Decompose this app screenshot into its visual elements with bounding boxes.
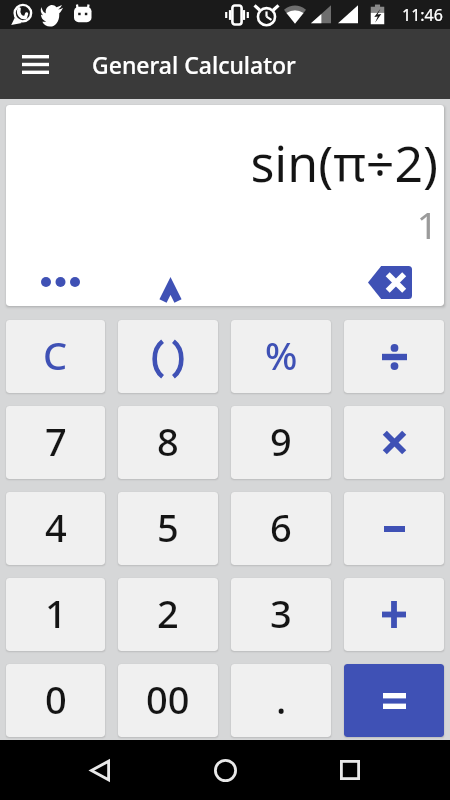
button[interactable]: = bbox=[344, 664, 444, 737]
button[interactable]: ÷ bbox=[344, 320, 444, 393]
button[interactable]: − bbox=[344, 492, 444, 565]
button[interactable]: Back bbox=[70, 740, 130, 800]
button[interactable]: 0 bbox=[6, 664, 105, 737]
staticText: General Calculator bbox=[92, 49, 296, 80]
staticText: 3 bbox=[270, 587, 292, 639]
staticText: C bbox=[43, 329, 68, 381]
staticText: . bbox=[276, 673, 287, 725]
staticText: 7 bbox=[45, 415, 67, 467]
button[interactable]: Home bbox=[195, 740, 255, 800]
staticText: 1 bbox=[45, 587, 67, 639]
button[interactable]: 9 bbox=[231, 406, 331, 479]
button[interactable]: () bbox=[118, 320, 218, 393]
button[interactable]: Expand bbox=[146, 275, 194, 306]
button[interactable]: 00 bbox=[118, 664, 218, 737]
staticText: 9 bbox=[270, 415, 292, 467]
staticText: 1 bbox=[6, 199, 438, 249]
button[interactable]: Recents bbox=[320, 740, 380, 800]
button[interactable]: × bbox=[344, 406, 444, 479]
button[interactable]: 6 bbox=[231, 492, 331, 565]
staticText: 4 bbox=[45, 501, 67, 553]
staticText: 2 bbox=[157, 587, 179, 639]
button[interactable]: 2 bbox=[118, 578, 218, 651]
staticText: 5 bbox=[157, 501, 179, 553]
button[interactable]: 1 bbox=[6, 578, 105, 651]
staticText: 8 bbox=[157, 415, 179, 467]
button[interactable]: 4 bbox=[6, 492, 105, 565]
staticText: 11:46 bbox=[402, 4, 443, 26]
button[interactable]: 8 bbox=[118, 406, 218, 479]
staticText: 0 bbox=[45, 673, 67, 725]
staticText: sin(π÷2) bbox=[6, 129, 438, 197]
button[interactable]: Backspace bbox=[364, 263, 416, 301]
button[interactable]: 5 bbox=[118, 492, 218, 565]
button[interactable]: 3 bbox=[231, 578, 331, 651]
staticText: 00 bbox=[146, 673, 190, 725]
button[interactable]: 7 bbox=[6, 406, 105, 479]
button[interactable]: % bbox=[231, 320, 331, 393]
staticText: % bbox=[265, 329, 298, 381]
button[interactable]: Menu bbox=[9, 38, 61, 90]
button[interactable]: C bbox=[6, 320, 105, 393]
staticText: 6 bbox=[270, 501, 292, 553]
button[interactable]: + bbox=[344, 578, 444, 651]
button[interactable]: . bbox=[231, 664, 331, 737]
button[interactable]: More options bbox=[33, 265, 87, 299]
